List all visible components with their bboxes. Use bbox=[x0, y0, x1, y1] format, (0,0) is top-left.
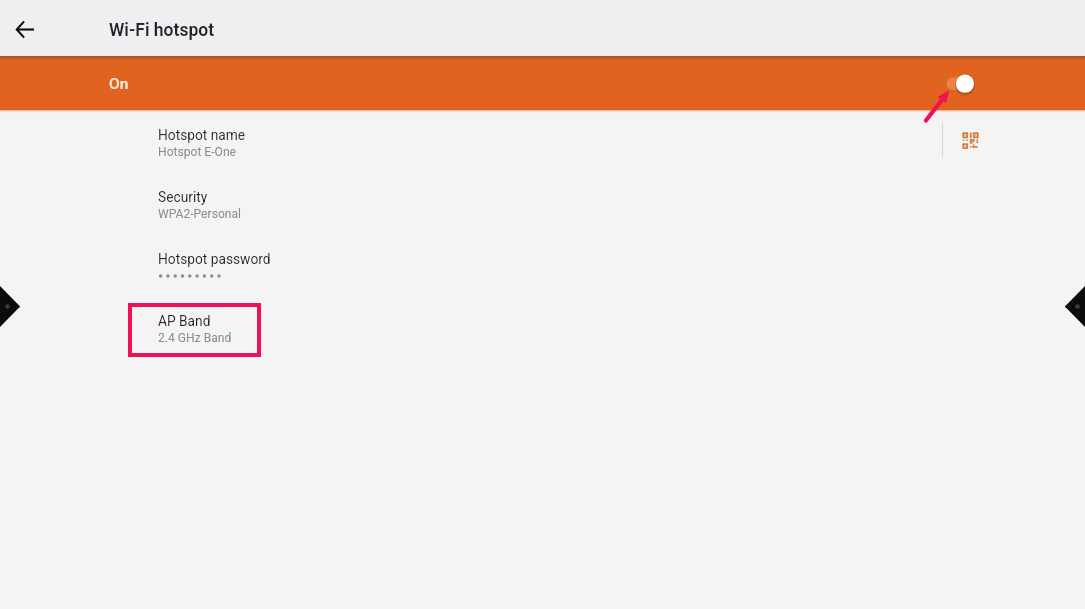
button[interactable]: Hotspot password bbox=[0, 236, 1085, 298]
staticText: AP Band bbox=[158, 313, 211, 329]
staticText: Wi-Fi hotspot bbox=[109, 20, 215, 41]
staticText: Security bbox=[158, 189, 208, 205]
button[interactable]: AP Band bbox=[0, 298, 1085, 360]
button[interactable]: Back bbox=[6, 10, 44, 48]
staticText: Hotspot name bbox=[158, 127, 246, 143]
staticText: Hotspot E-One bbox=[158, 145, 236, 159]
button[interactable]: Security bbox=[0, 174, 1085, 236]
button[interactable]: On bbox=[0, 56, 1085, 110]
button[interactable]: Share hotspot QR code bbox=[950, 121, 990, 161]
staticText: On bbox=[109, 75, 129, 93]
button[interactable]: Hotspot on/off toggle bbox=[940, 56, 986, 110]
staticText: WPA2-Personal bbox=[158, 207, 241, 221]
button[interactable]: Hotspot name bbox=[0, 112, 1085, 174]
staticText: 2.4 GHz Band bbox=[158, 331, 232, 345]
staticText: Hotspot password bbox=[158, 251, 271, 267]
